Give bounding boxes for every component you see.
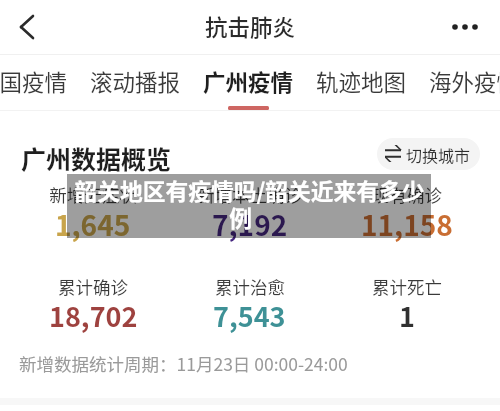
- button[interactable]: 轨迹地图: [305, 55, 418, 110]
- button[interactable]: Back: [6, 0, 48, 54]
- staticText: 滚动播报: [90, 65, 181, 98]
- staticText: 例: [229, 201, 252, 234]
- staticText: 现有确诊: [372, 182, 442, 207]
- button[interactable]: More options: [440, 0, 490, 54]
- staticText: 广州数据概览: [21, 140, 172, 176]
- staticText: 1: [399, 296, 415, 335]
- staticText: 海外疫情: [429, 65, 500, 98]
- staticText: 18,702: [49, 296, 138, 335]
- button[interactable]: 滚动播报: [79, 55, 192, 110]
- staticText: 韶关地区有疫情吗/韶关近来有多少: [74, 174, 425, 207]
- staticText: 11,158: [361, 204, 453, 245]
- button[interactable]: 海外疫情: [418, 55, 500, 110]
- staticText: 7,543: [213, 296, 286, 335]
- staticText: 累计死亡: [372, 274, 442, 299]
- button[interactable]: 全国疫情: [0, 55, 79, 110]
- staticText: 累计治愈: [215, 274, 285, 299]
- staticText: 新增本土确诊: [197, 182, 302, 207]
- staticText: 1,645: [55, 204, 131, 245]
- button[interactable]: 切换城市: [377, 138, 480, 170]
- staticText: 新增数据统计周期：11月23日 00:00-24:00: [19, 351, 348, 376]
- staticText: 新增无症状: [49, 182, 137, 207]
- button[interactable]: 广州疫情: [192, 55, 305, 110]
- staticText: 全国疫情: [0, 65, 68, 98]
- staticText: 广州疫情: [203, 65, 294, 98]
- staticText: 7,192: [212, 204, 288, 245]
- staticText: 切换城市: [406, 143, 471, 166]
- staticText: 累计确诊: [58, 274, 128, 299]
- staticText: 轨迹地图: [316, 65, 407, 98]
- staticText: 抗击肺炎: [205, 10, 296, 43]
